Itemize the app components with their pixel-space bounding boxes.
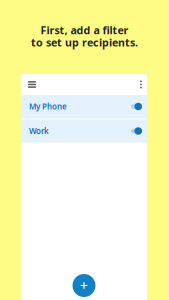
button[interactable]: More options [135,76,147,92]
staticText: to set up recipients. [31,35,138,49]
button[interactable]: Menu [24,76,40,92]
staticText: Work [29,126,49,136]
button[interactable]: Work [21,119,147,142]
staticText: First, add a filter [40,23,128,37]
staticText: My Phone [29,101,67,112]
button[interactable]: Add filter [72,274,95,297]
button[interactable]: My Phone [21,95,147,118]
